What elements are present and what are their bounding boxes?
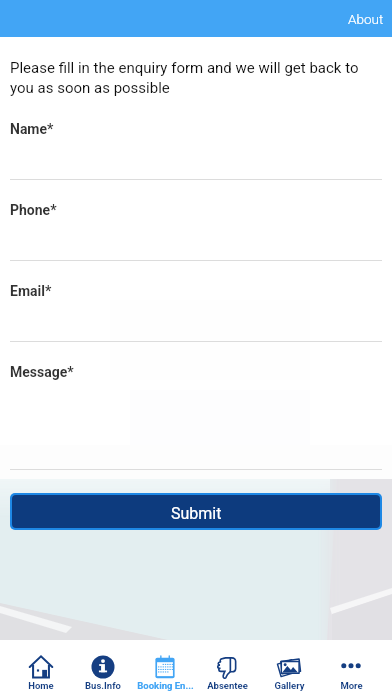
button[interactable]: Gallery [258,644,320,696]
staticText: Bus.Info [85,680,121,691]
staticText: Name* [10,121,54,137]
staticText: Phone* [10,202,57,218]
staticText: Message* [10,364,74,380]
staticText: More [340,680,363,691]
staticText: Booking En... [137,680,194,691]
button[interactable]: About [338,3,392,35]
button[interactable]: Booking En... [134,644,196,696]
button[interactable]: Absentee [196,644,258,696]
staticText: Email* [10,283,52,299]
staticText: Absentee [207,680,248,691]
staticText: Please fill in the enquiry form and we w… [10,59,382,96]
button[interactable]: Home [10,644,72,696]
button[interactable]: Bus.Info [72,644,134,696]
staticText: Home [28,680,54,691]
staticText: About [348,11,384,27]
staticText: Gallery [274,680,305,691]
button[interactable]: More [320,644,382,696]
button[interactable]: Submit [12,495,380,528]
staticText: Submit [171,504,222,523]
